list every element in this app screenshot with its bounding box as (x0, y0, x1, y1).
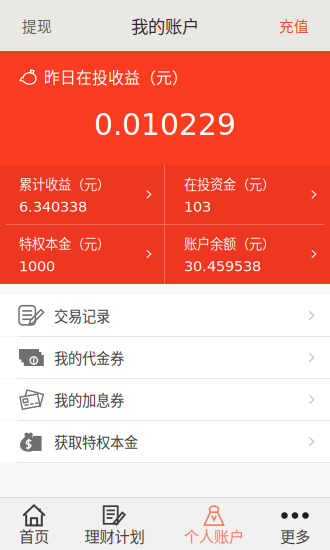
staticText: 提现 (22, 15, 52, 36)
button[interactable]: 我的加息券 (0, 379, 330, 420)
button[interactable]: 理财计划 (61, 498, 168, 550)
staticText: 首页 (19, 524, 49, 547)
staticText: 交易记录 (54, 305, 110, 326)
staticText: 0.010229 (94, 107, 236, 142)
staticText: 30.459538 (184, 258, 261, 275)
button[interactable]: 个人账户 (168, 498, 260, 550)
staticText: 账户余额（元） (184, 233, 275, 253)
staticText: 1000 (19, 258, 55, 275)
button[interactable]: 交易记录 (0, 295, 330, 336)
staticText: 获取特权本金 (54, 431, 138, 452)
button[interactable]: 在投资金（元） (165, 165, 330, 224)
staticText: 特权本金（元） (19, 233, 110, 253)
button[interactable]: 我的代金券 (0, 337, 330, 378)
button[interactable]: 账户余额（元） (165, 224, 330, 284)
button[interactable]: 首页 (7, 498, 61, 550)
staticText: 个人账户 (184, 524, 244, 547)
staticText: 在投资金（元） (184, 174, 275, 193)
staticText: 6.340338 (19, 198, 87, 215)
staticText: 103 (184, 198, 211, 215)
staticText: 累计收益（元） (19, 174, 110, 193)
staticText: 我的加息券 (54, 389, 124, 410)
staticText: 充值 (279, 15, 309, 36)
staticText: 理财计划 (84, 524, 144, 547)
staticText: 昨日在投收益（元） (44, 65, 188, 88)
staticText: 我的账户 (131, 13, 199, 38)
button[interactable]: 更多 (260, 498, 330, 550)
button[interactable]: 累计收益（元） (0, 165, 165, 224)
button[interactable]: 特权本金（元） (0, 224, 165, 284)
button[interactable]: 获取特权本金 (0, 421, 330, 462)
staticText: 更多 (280, 524, 310, 547)
button[interactable]: 提现 (0, 5, 66, 45)
button[interactable]: 充值 (265, 5, 330, 45)
staticText: 我的代金券 (54, 347, 124, 368)
